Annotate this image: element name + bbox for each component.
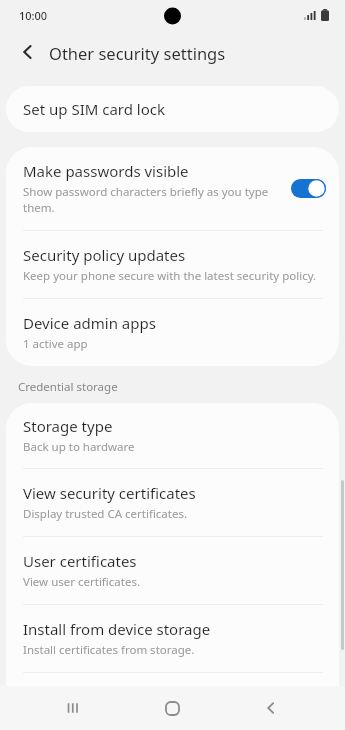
staticText: View security certificates xyxy=(23,483,196,503)
button[interactable]: Clear credentials xyxy=(6,673,339,730)
staticText: Make passwords visible xyxy=(23,161,189,181)
button[interactable]: Set up SIM card lock xyxy=(6,86,339,132)
button[interactable]: User certificates xyxy=(6,537,339,604)
button[interactable]: Security policy updates xyxy=(6,231,339,298)
staticText: Keep your phone secure with the latest s… xyxy=(23,268,317,284)
staticText: Remove all certificates. xyxy=(23,710,147,716)
button[interactable]: Make passwords visible xyxy=(6,147,339,230)
staticText: Credential storage xyxy=(18,379,118,395)
staticText: Security policy updates xyxy=(23,245,186,265)
staticText: Display trusted CA certificates. xyxy=(23,506,188,522)
button[interactable]: Device admin apps xyxy=(6,299,339,366)
staticText: Back up to hardware xyxy=(23,439,135,455)
staticText: View user certificates. xyxy=(23,574,140,590)
staticText: Show password characters briefly as you … xyxy=(23,184,291,216)
staticText: Install certificates from storage. xyxy=(23,642,195,658)
button[interactable]: Storage type xyxy=(6,403,339,468)
staticText: Clear credentials xyxy=(23,687,141,707)
staticText: Device admin apps xyxy=(23,313,156,333)
button[interactable]: Back xyxy=(256,693,286,723)
staticText: User certificates xyxy=(23,551,137,571)
staticText: 1 active app xyxy=(23,336,88,352)
staticText: 10:00 xyxy=(19,8,48,23)
staticText: Set up SIM card lock xyxy=(23,99,166,119)
button[interactable]: Home xyxy=(157,693,187,723)
staticText: Install from device storage xyxy=(23,619,211,639)
staticText: Other security settings xyxy=(49,42,226,64)
button[interactable]: Make passwords visible xyxy=(291,179,326,198)
button[interactable]: View security certificates xyxy=(6,469,339,536)
button[interactable]: Install from device storage xyxy=(6,605,339,672)
button[interactable]: Navigate up xyxy=(11,35,44,68)
button[interactable]: Recent apps xyxy=(58,693,88,723)
staticText: Storage type xyxy=(23,416,113,436)
